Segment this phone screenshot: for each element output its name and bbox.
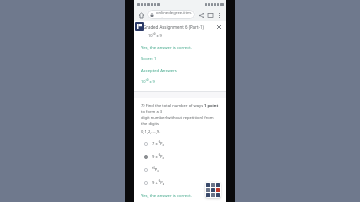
- staticText: ¹⁰P₃: [152, 167, 159, 173]
- button[interactable]: 9 + ⁹P₂: [134, 179, 226, 187]
- staticText: Graded Assignment 6 (Part-1): [143, 24, 215, 30]
- button[interactable]: Calculator: [205, 182, 221, 198]
- staticText: 7 x ⁹P₂: [152, 141, 164, 147]
- button[interactable]: Close: [215, 23, 223, 31]
- button[interactable]: Home: [137, 11, 145, 19]
- staticText: 1 point: [204, 103, 219, 109]
- staticText: onlinedegree.iitm.ac.in: [156, 10, 192, 19]
- staticText: 9 + ⁹P₂: [152, 180, 165, 186]
- button[interactable]: 7 x ⁹P₂: [134, 140, 226, 148]
- button[interactable]: onlinedegree.iitm.ac.in: [147, 10, 195, 19]
- staticText: 0,1,2,....,9.: [141, 129, 161, 135]
- staticText: 10¹⁰ x 9: [148, 33, 162, 38]
- staticText: Score: 1: [141, 56, 157, 62]
- staticText: Yes, the answer is correct.: [141, 45, 192, 51]
- staticText: 9 x ⁹P₂: [152, 154, 164, 160]
- button[interactable]: 9 x ⁹P₂: [134, 153, 226, 161]
- button[interactable]: Share: [197, 11, 205, 19]
- staticText: 7) Find the total number of ways to form…: [141, 103, 204, 115]
- staticText: Accepted Answers: [141, 68, 177, 74]
- button[interactable]: App icon: [135, 22, 144, 31]
- button[interactable]: ¹⁰P₃: [134, 166, 226, 174]
- staticText: 10¹⁰ x 9: [141, 79, 155, 84]
- staticText: Yes, the answer is correct.: [141, 193, 192, 199]
- button[interactable]: More options: [215, 11, 223, 19]
- button[interactable]: Cast: [206, 11, 214, 19]
- staticText: digit number(without repetition) from th…: [141, 115, 219, 127]
